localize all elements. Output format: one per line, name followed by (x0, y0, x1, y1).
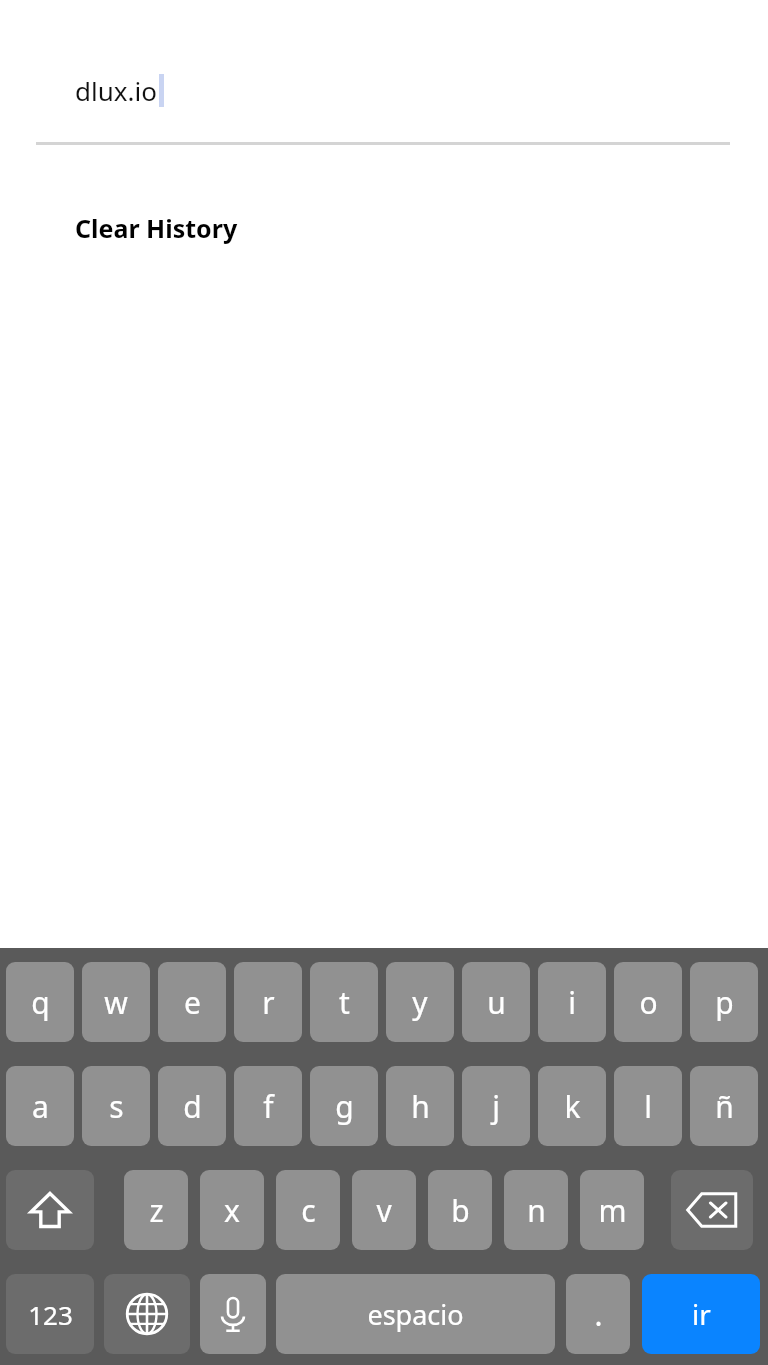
staticText: w (104, 982, 128, 1023)
button[interactable]: b (428, 1170, 492, 1250)
staticText: x (224, 1190, 240, 1231)
button[interactable]: dlux.io (0, 68, 768, 112)
staticText: u (487, 982, 506, 1023)
staticText: a (32, 1086, 49, 1127)
button[interactable]: v (352, 1170, 416, 1250)
staticText: ñ (715, 1086, 734, 1127)
staticText: z (149, 1190, 164, 1231)
button[interactable]: Clear History (0, 207, 768, 249)
button[interactable]: . (566, 1274, 630, 1354)
button[interactable]: Change keyboard (104, 1274, 190, 1354)
staticText: m (598, 1190, 627, 1231)
button[interactable]: m (580, 1170, 644, 1250)
button[interactable]: espacio (276, 1274, 555, 1354)
button[interactable]: r (234, 962, 302, 1042)
button[interactable]: k (538, 1066, 606, 1146)
staticText: ir (692, 1295, 711, 1333)
staticText: y (412, 982, 428, 1023)
staticText: p (715, 982, 734, 1023)
staticText: j (492, 1086, 500, 1127)
staticText: l (644, 1086, 652, 1127)
button[interactable]: Backspace (671, 1170, 753, 1250)
button[interactable]: s (82, 1066, 150, 1146)
button[interactable]: a (6, 1066, 74, 1146)
button[interactable]: j (462, 1066, 530, 1146)
staticText: dlux.io (75, 73, 157, 108)
button[interactable]: z (124, 1170, 188, 1250)
staticText: o (639, 982, 658, 1023)
button[interactable]: Voice input (200, 1274, 266, 1354)
staticText: . (594, 1294, 603, 1335)
staticText: n (527, 1190, 546, 1231)
button[interactable]: ir (642, 1274, 760, 1354)
staticText: g (335, 1086, 354, 1127)
button[interactable]: c (276, 1170, 340, 1250)
button[interactable]: p (690, 962, 758, 1042)
button[interactable]: t (310, 962, 378, 1042)
button[interactable]: d (158, 1066, 226, 1146)
button[interactable]: x (200, 1170, 264, 1250)
button[interactable]: u (462, 962, 530, 1042)
staticText: 123 (28, 1297, 73, 1332)
staticText: q (31, 982, 50, 1023)
button[interactable]: w (82, 962, 150, 1042)
button[interactable]: h (386, 1066, 454, 1146)
button[interactable]: q (6, 962, 74, 1042)
staticText: espacio (367, 1296, 464, 1333)
button[interactable]: e (158, 962, 226, 1042)
staticText: f (263, 1086, 274, 1127)
button[interactable]: o (614, 962, 682, 1042)
button[interactable]: n (504, 1170, 568, 1250)
button[interactable]: l (614, 1066, 682, 1146)
button[interactable]: f (234, 1066, 302, 1146)
button[interactable]: 123 (6, 1274, 94, 1354)
staticText: i (568, 982, 576, 1023)
button[interactable]: i (538, 962, 606, 1042)
staticText: k (564, 1086, 581, 1127)
staticText: h (411, 1086, 430, 1127)
staticText: b (451, 1190, 470, 1231)
staticText: d (183, 1086, 202, 1127)
staticText: c (301, 1190, 316, 1231)
staticText: e (184, 982, 201, 1023)
staticText: t (339, 982, 350, 1023)
button[interactable]: Shift (6, 1170, 94, 1250)
button[interactable]: y (386, 962, 454, 1042)
staticText: r (262, 982, 275, 1023)
staticText: v (376, 1190, 392, 1231)
button[interactable]: ñ (690, 1066, 758, 1146)
staticText: Clear History (75, 211, 238, 245)
staticText: s (109, 1086, 124, 1127)
button[interactable]: g (310, 1066, 378, 1146)
